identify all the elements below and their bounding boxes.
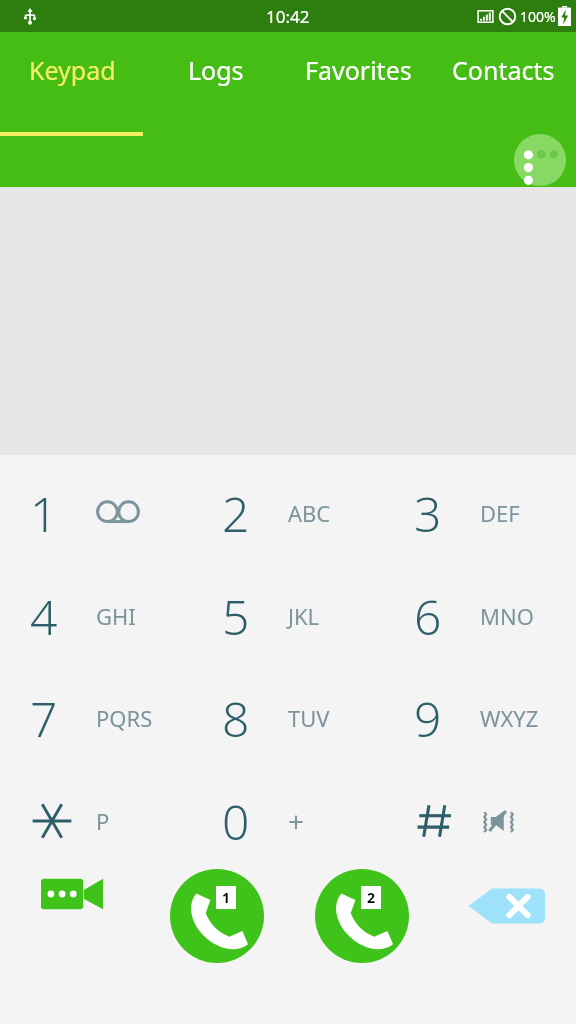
staticText: 2 [222,481,250,546]
button[interactable]: 5 [192,565,384,667]
button[interactable]: More options [511,131,569,189]
staticText: 9 [414,686,442,751]
staticText: 100% [520,7,556,26]
button[interactable]: Call with SIM 2 [315,869,409,963]
button[interactable]: Delete [466,885,546,927]
staticText: Contacts [452,53,555,87]
staticText: DEF [480,498,520,528]
staticText: Keypad [29,53,116,87]
button[interactable]: Call with SIM 1 [170,869,264,963]
button[interactable]: 1 [0,462,192,564]
staticText: 8 [222,686,250,751]
button[interactable]: 7 [0,667,192,769]
staticText: 1 [222,888,231,907]
staticText: 6 [414,584,442,649]
button[interactable]: 6 [384,565,576,667]
staticText: 2 [367,888,376,907]
staticText: PQRS [96,703,153,733]
staticText: ABC [288,498,331,528]
staticText: GHI [96,601,136,631]
button[interactable]: Keypad [0,32,144,108]
button[interactable]: Contacts [430,32,576,108]
staticText: 5 [222,584,250,649]
button[interactable]: 0 [192,770,384,872]
staticText: Favorites [305,53,412,87]
staticText: P [96,806,110,836]
button[interactable]: 8 [192,667,384,769]
staticText: 7 [30,686,58,751]
staticText: JKL [288,601,320,631]
staticText: 4 [30,584,58,649]
staticText: 3 [414,481,442,546]
button[interactable]: 9 [384,667,576,769]
button[interactable]: Video call [34,869,110,919]
staticText: WXYZ [480,703,539,733]
button[interactable]: P [0,770,192,872]
staticText: Logs [188,53,244,87]
staticText: 10:42 [266,5,310,28]
button[interactable]: 3 [384,462,576,564]
staticText: MNO [480,601,534,631]
button[interactable]: 4 [0,565,192,667]
button[interactable]: 2 [192,462,384,564]
staticText: + [288,802,305,840]
staticText: 0 [222,789,250,854]
staticText: TUV [288,703,330,733]
button[interactable]: Favorites [283,32,433,108]
button[interactable]: Logs [156,32,276,108]
staticText: 1 [30,481,58,546]
button[interactable] [384,770,576,872]
